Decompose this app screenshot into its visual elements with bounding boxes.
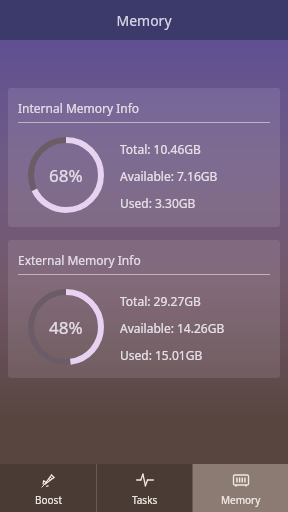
- staticText: Memory: [116, 11, 172, 30]
- staticText: Available: 7.16GB: [120, 168, 218, 184]
- button[interactable]: Memory: [193, 464, 288, 512]
- staticText: Available: 14.26GB: [120, 320, 225, 336]
- staticText: Used: 15.01GB: [120, 347, 203, 363]
- staticText: Total: 29.27GB: [120, 293, 201, 309]
- button[interactable]: Boost: [0, 464, 96, 512]
- staticText: Boost: [35, 493, 62, 507]
- other: Boost: [39, 470, 59, 490]
- other: Memory: [231, 470, 251, 490]
- staticText: Internal Memory Info: [18, 100, 140, 116]
- staticText: 68%: [49, 164, 83, 187]
- staticText: Tasks: [132, 493, 158, 507]
- staticText: Used: 3.30GB: [120, 195, 196, 211]
- button[interactable]: External Memory Info: [8, 240, 280, 378]
- staticText: Memory: [221, 493, 261, 507]
- staticText: 48%: [49, 316, 83, 339]
- other: Tasks: [135, 470, 155, 490]
- button[interactable]: Internal Memory Info: [8, 88, 280, 227]
- staticText: Total: 10.46GB: [120, 141, 201, 157]
- button[interactable]: Tasks: [97, 464, 192, 512]
- staticText: External Memory Info: [18, 252, 141, 268]
